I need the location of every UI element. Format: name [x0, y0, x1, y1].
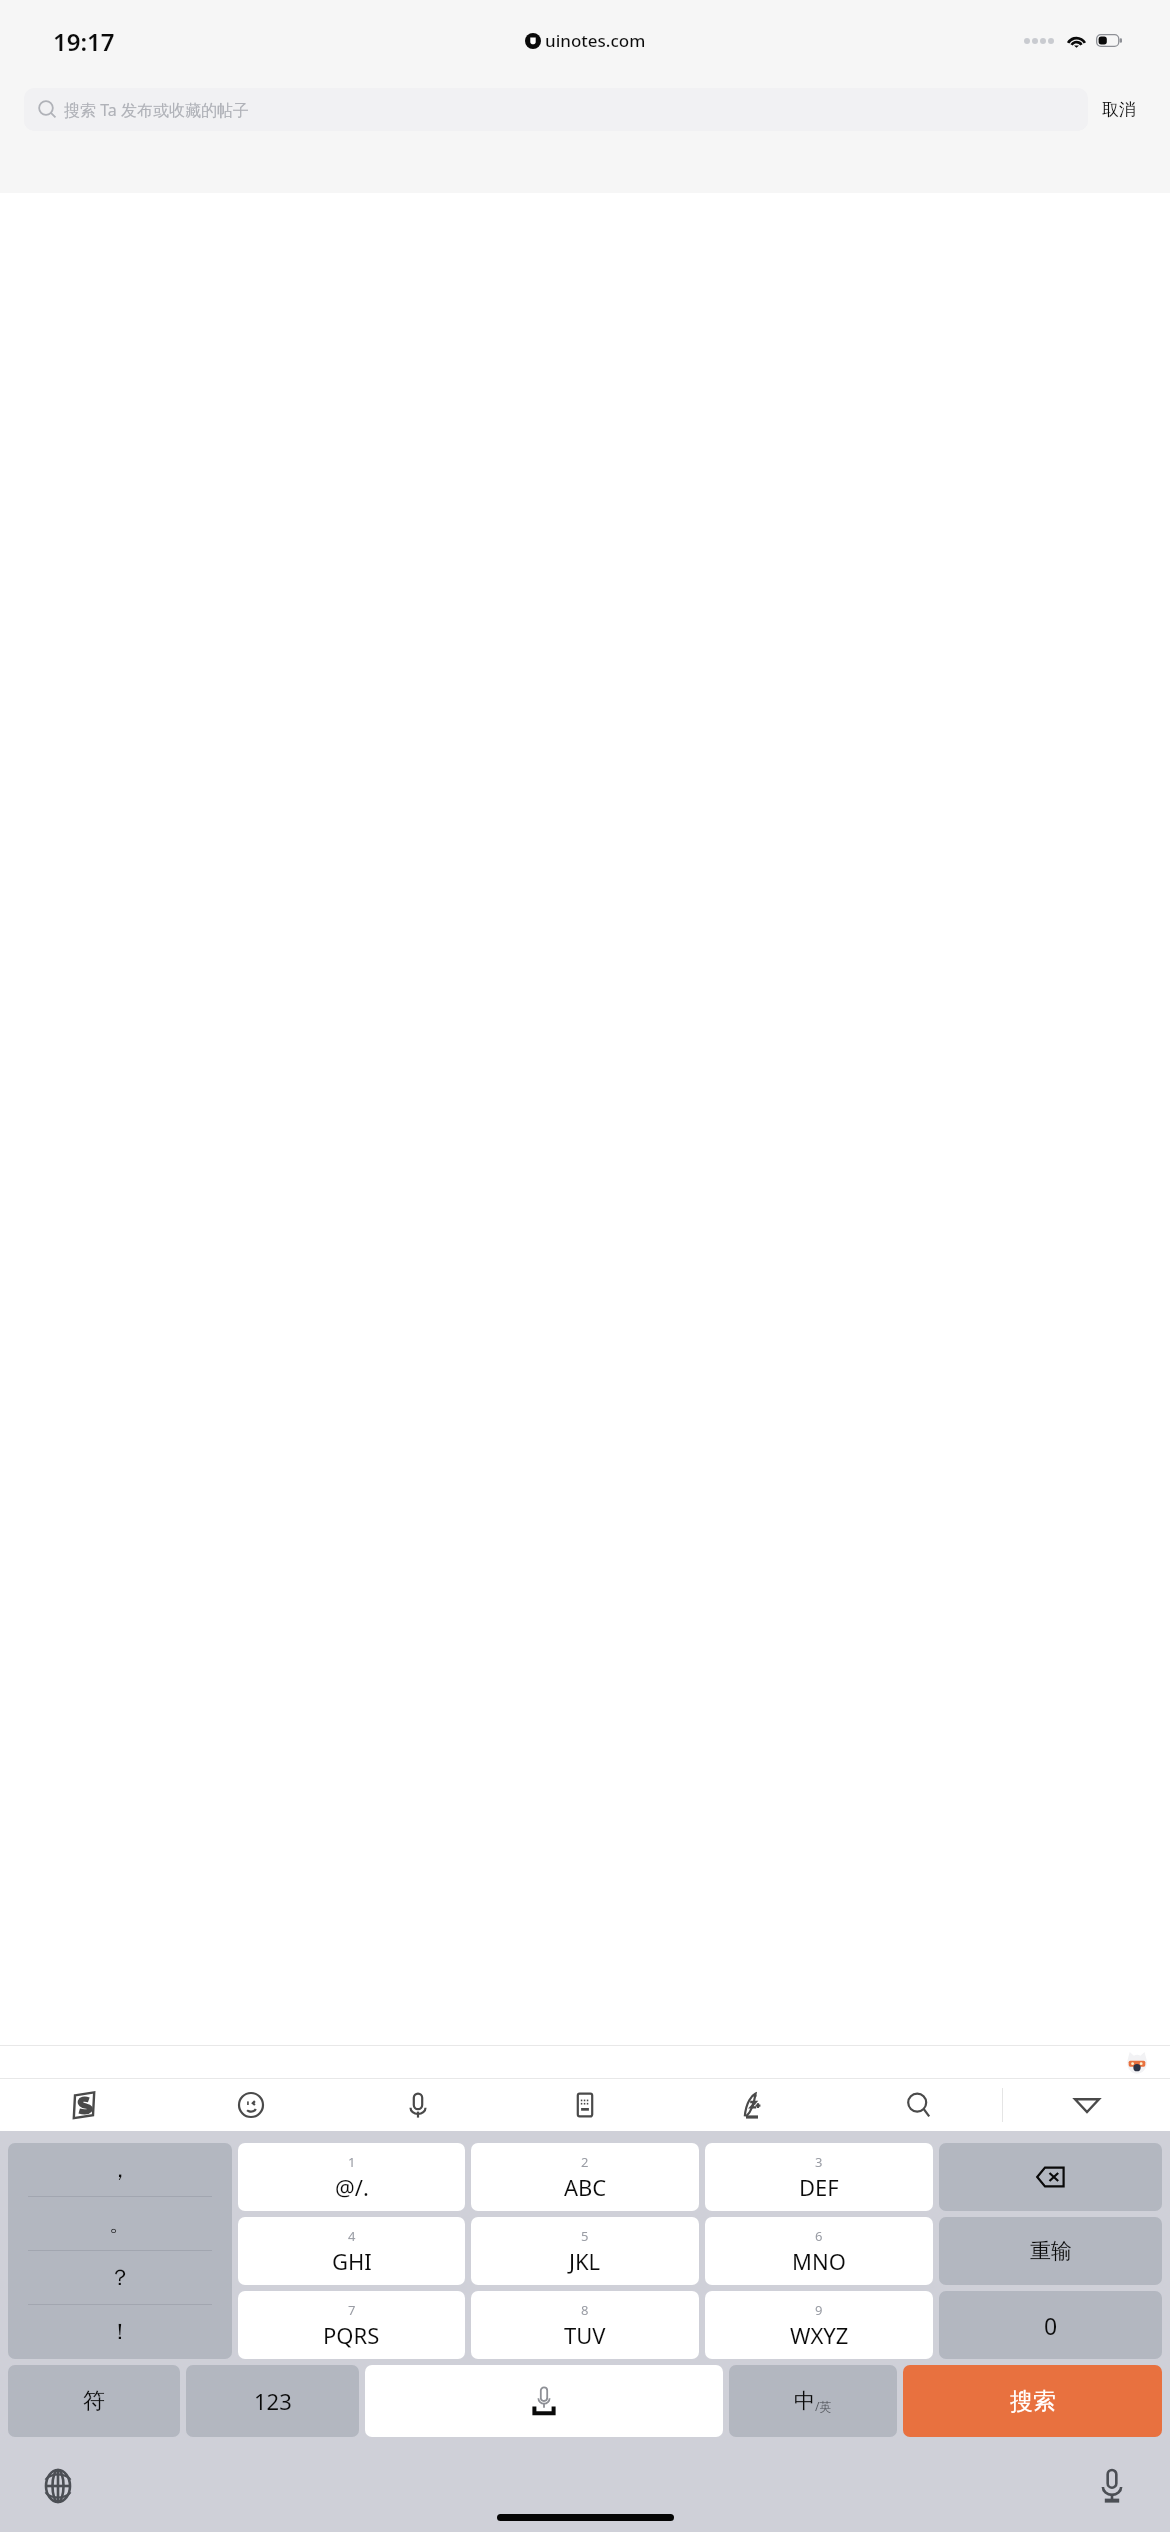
- button[interactable]: 5: [471, 2217, 699, 2285]
- button[interactable]: ？: [8, 2251, 232, 2305]
- staticText: 4: [348, 2227, 356, 2245]
- button[interactable]: Emoji: [167, 2079, 334, 2131]
- staticText: 重输: [1030, 2238, 1072, 2264]
- staticText: 0: [1044, 2310, 1058, 2341]
- button[interactable]: 符: [8, 2365, 180, 2437]
- staticText: 3: [815, 2153, 823, 2171]
- staticText: 。: [109, 2210, 131, 2238]
- button[interactable]: 搜索: [903, 2365, 1162, 2437]
- staticText: 5: [581, 2227, 589, 2245]
- staticText: 123: [254, 2386, 292, 2416]
- button[interactable]: 取消: [1088, 91, 1150, 128]
- button[interactable]: Avatar: [1124, 2049, 1150, 2075]
- staticText: ？: [109, 2264, 131, 2292]
- button[interactable]: ！: [8, 2305, 232, 2359]
- button[interactable]: 123: [186, 2365, 359, 2437]
- button[interactable]: Voice input: [1094, 2468, 1130, 2504]
- button[interactable]: 3: [705, 2143, 933, 2211]
- staticText: 1: [348, 2153, 356, 2171]
- staticText: 9: [815, 2301, 823, 2319]
- button[interactable]: 8: [471, 2291, 699, 2359]
- staticText: PQRS: [323, 2320, 380, 2350]
- staticText: ！: [109, 2318, 131, 2346]
- button[interactable]: 1: [238, 2143, 465, 2211]
- staticText: DEF: [799, 2172, 839, 2202]
- staticText: 取消: [1102, 99, 1136, 120]
- button[interactable]: 4: [238, 2217, 465, 2285]
- staticText: GHI: [332, 2246, 372, 2276]
- button[interactable]: ，: [8, 2143, 232, 2197]
- staticText: ，: [109, 2156, 131, 2184]
- button[interactable]: 0: [939, 2291, 1162, 2359]
- staticText: ABC: [564, 2172, 607, 2202]
- staticText: /英: [815, 2398, 832, 2414]
- staticText: 搜索 Ta 发布或收藏的帖子: [64, 99, 249, 121]
- staticText: 6: [815, 2227, 823, 2245]
- staticText: WXYZ: [790, 2320, 849, 2350]
- staticText: 19:17: [53, 25, 115, 58]
- staticText: @/.: [335, 2172, 369, 2202]
- button[interactable]: Keyboard layout: [501, 2079, 668, 2131]
- button[interactable]: Voice input: [334, 2079, 501, 2131]
- button[interactable]: Sogou: [0, 2079, 167, 2131]
- staticText: 2: [581, 2153, 589, 2171]
- button[interactable]: 重输: [939, 2217, 1162, 2285]
- button[interactable]: Delete: [939, 2143, 1162, 2211]
- button[interactable]: Switch language: [40, 2468, 76, 2504]
- staticText: 7: [348, 2301, 356, 2319]
- button[interactable]: 中: [729, 2365, 897, 2437]
- button[interactable]: Handwriting: [668, 2079, 835, 2131]
- button[interactable]: 。: [8, 2197, 232, 2251]
- staticText: 中: [794, 2388, 815, 2414]
- button[interactable]: Space: [365, 2365, 723, 2437]
- button[interactable]: 6: [705, 2217, 933, 2285]
- button[interactable]: 2: [471, 2143, 699, 2211]
- staticText: 搜索: [1010, 2387, 1056, 2416]
- button[interactable]: Hide keyboard: [1003, 2079, 1170, 2131]
- button[interactable]: 搜索 Ta 发布或收藏的帖子: [24, 88, 1088, 131]
- button[interactable]: 7: [238, 2291, 465, 2359]
- button[interactable]: 9: [705, 2291, 933, 2359]
- staticText: MNO: [792, 2246, 846, 2276]
- staticText: 符: [83, 2387, 105, 2415]
- staticText: TUV: [564, 2320, 606, 2350]
- button[interactable]: Search: [835, 2079, 1002, 2131]
- staticText: JKL: [569, 2246, 601, 2276]
- staticText: uinotes.com: [545, 29, 646, 52]
- staticText: 8: [581, 2301, 589, 2319]
